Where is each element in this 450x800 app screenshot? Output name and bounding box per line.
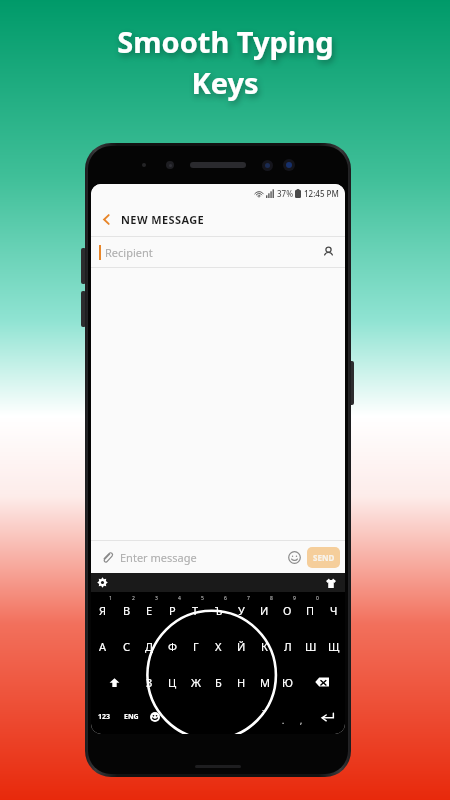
staticText: Е bbox=[146, 603, 153, 618]
staticText: Н bbox=[237, 675, 246, 690]
staticText: Ъ bbox=[215, 603, 223, 618]
button[interactable]: Н bbox=[230, 664, 253, 700]
button[interactable]: , bbox=[292, 700, 310, 734]
staticText: 2 bbox=[132, 595, 135, 602]
staticText: 37% bbox=[277, 188, 293, 199]
staticText: Ц bbox=[168, 675, 177, 690]
staticText: Д bbox=[145, 639, 154, 654]
button[interactable]: Е bbox=[138, 592, 161, 628]
button[interactable]: М bbox=[253, 664, 276, 700]
button[interactable]: С bbox=[115, 628, 138, 664]
button[interactable]: Ъ bbox=[207, 592, 230, 628]
staticText: Р bbox=[169, 603, 176, 618]
staticText: Т bbox=[192, 603, 199, 618]
staticText: Ю bbox=[282, 675, 293, 690]
button[interactable]: Add contact bbox=[315, 239, 341, 265]
staticText: П bbox=[306, 603, 315, 618]
button[interactable]: З bbox=[138, 664, 161, 700]
button[interactable]: К bbox=[253, 628, 276, 664]
staticText: SEND bbox=[313, 552, 335, 563]
staticText: 5 bbox=[201, 595, 204, 602]
staticText: Я bbox=[99, 603, 107, 618]
button[interactable]: Ч bbox=[322, 592, 345, 628]
button[interactable]: Backspace bbox=[299, 664, 345, 700]
staticText: Enter message bbox=[120, 550, 197, 565]
staticText: . bbox=[282, 715, 285, 726]
staticText: 6 bbox=[224, 595, 227, 602]
staticText: Б bbox=[215, 675, 222, 690]
staticText: ? bbox=[262, 708, 266, 718]
button[interactable]: Keyboard theme bbox=[320, 573, 342, 592]
button[interactable]: Г bbox=[184, 628, 207, 664]
staticText: 0 bbox=[316, 595, 319, 602]
staticText: Х bbox=[215, 639, 222, 654]
staticText: Smooth Typing bbox=[117, 22, 334, 61]
staticText: К bbox=[261, 639, 268, 654]
staticText: У bbox=[238, 603, 245, 618]
button[interactable]: Й bbox=[230, 628, 253, 664]
staticText: 4 bbox=[178, 595, 181, 602]
staticText: Ж bbox=[191, 675, 201, 690]
staticText: Recipient bbox=[105, 245, 153, 260]
button[interactable]: Ю bbox=[276, 664, 299, 700]
staticText: Л bbox=[284, 639, 292, 654]
button[interactable]: В bbox=[115, 592, 138, 628]
button[interactable]: Recipient bbox=[91, 237, 345, 267]
button[interactable]: И bbox=[253, 592, 276, 628]
staticText: , bbox=[300, 715, 303, 726]
staticText: 8 bbox=[270, 595, 273, 602]
staticText: 12:45 PM bbox=[304, 188, 339, 199]
button[interactable]: Ф bbox=[161, 628, 184, 664]
button[interactable]: Attach bbox=[97, 547, 117, 567]
staticText: О bbox=[283, 603, 292, 618]
staticText: 7 bbox=[247, 595, 250, 602]
staticText: М bbox=[260, 675, 270, 690]
staticText: З bbox=[146, 675, 153, 690]
staticText: 3 bbox=[155, 595, 158, 602]
staticText: И bbox=[260, 603, 269, 618]
button[interactable]: Back bbox=[91, 202, 121, 236]
staticText: С bbox=[123, 639, 131, 654]
button[interactable]: Ц bbox=[161, 664, 184, 700]
button[interactable]: Enter bbox=[310, 700, 345, 734]
staticText: 9 bbox=[293, 595, 296, 602]
staticText: ENG bbox=[124, 712, 139, 722]
button[interactable]: П bbox=[299, 592, 322, 628]
button[interactable]: Х bbox=[207, 628, 230, 664]
staticText: Ш bbox=[305, 639, 317, 654]
button[interactable]: 123 bbox=[91, 700, 118, 734]
staticText: NEW MESSAGE bbox=[121, 212, 205, 227]
button[interactable]: SEND bbox=[307, 547, 340, 568]
button[interactable]: Ж bbox=[184, 664, 207, 700]
staticText: 1 bbox=[109, 595, 112, 602]
button[interactable]: Emoji bbox=[283, 546, 305, 568]
button[interactable]: Shift bbox=[91, 664, 138, 700]
button[interactable]: У bbox=[230, 592, 253, 628]
button[interactable]: Т bbox=[184, 592, 207, 628]
button[interactable]: Л bbox=[276, 628, 299, 664]
button[interactable]: . bbox=[274, 700, 292, 734]
staticText: Й bbox=[237, 639, 246, 654]
button[interactable]: Ш bbox=[299, 628, 322, 664]
staticText: Keys bbox=[191, 63, 259, 102]
button[interactable]: Keyboard settings bbox=[91, 573, 113, 592]
button[interactable]: Space bbox=[165, 700, 253, 734]
button[interactable]: Д bbox=[138, 628, 161, 664]
button[interactable]: ENG bbox=[118, 700, 144, 734]
button[interactable]: Р bbox=[161, 592, 184, 628]
button[interactable]: О bbox=[276, 592, 299, 628]
staticText: В bbox=[123, 603, 131, 618]
button[interactable]: Щ bbox=[322, 628, 345, 664]
staticText: Щ bbox=[328, 639, 340, 654]
button[interactable]: Б bbox=[207, 664, 230, 700]
staticText: Г bbox=[193, 639, 199, 654]
button[interactable]: Я bbox=[91, 592, 115, 628]
staticText: Ф bbox=[168, 639, 177, 654]
staticText: 123 bbox=[98, 712, 111, 722]
button[interactable]: А bbox=[91, 628, 115, 664]
button[interactable]: ? bbox=[253, 700, 274, 734]
button[interactable]: Emoji bbox=[144, 700, 165, 734]
staticText: А bbox=[99, 639, 107, 654]
staticText: Ч bbox=[330, 603, 338, 618]
